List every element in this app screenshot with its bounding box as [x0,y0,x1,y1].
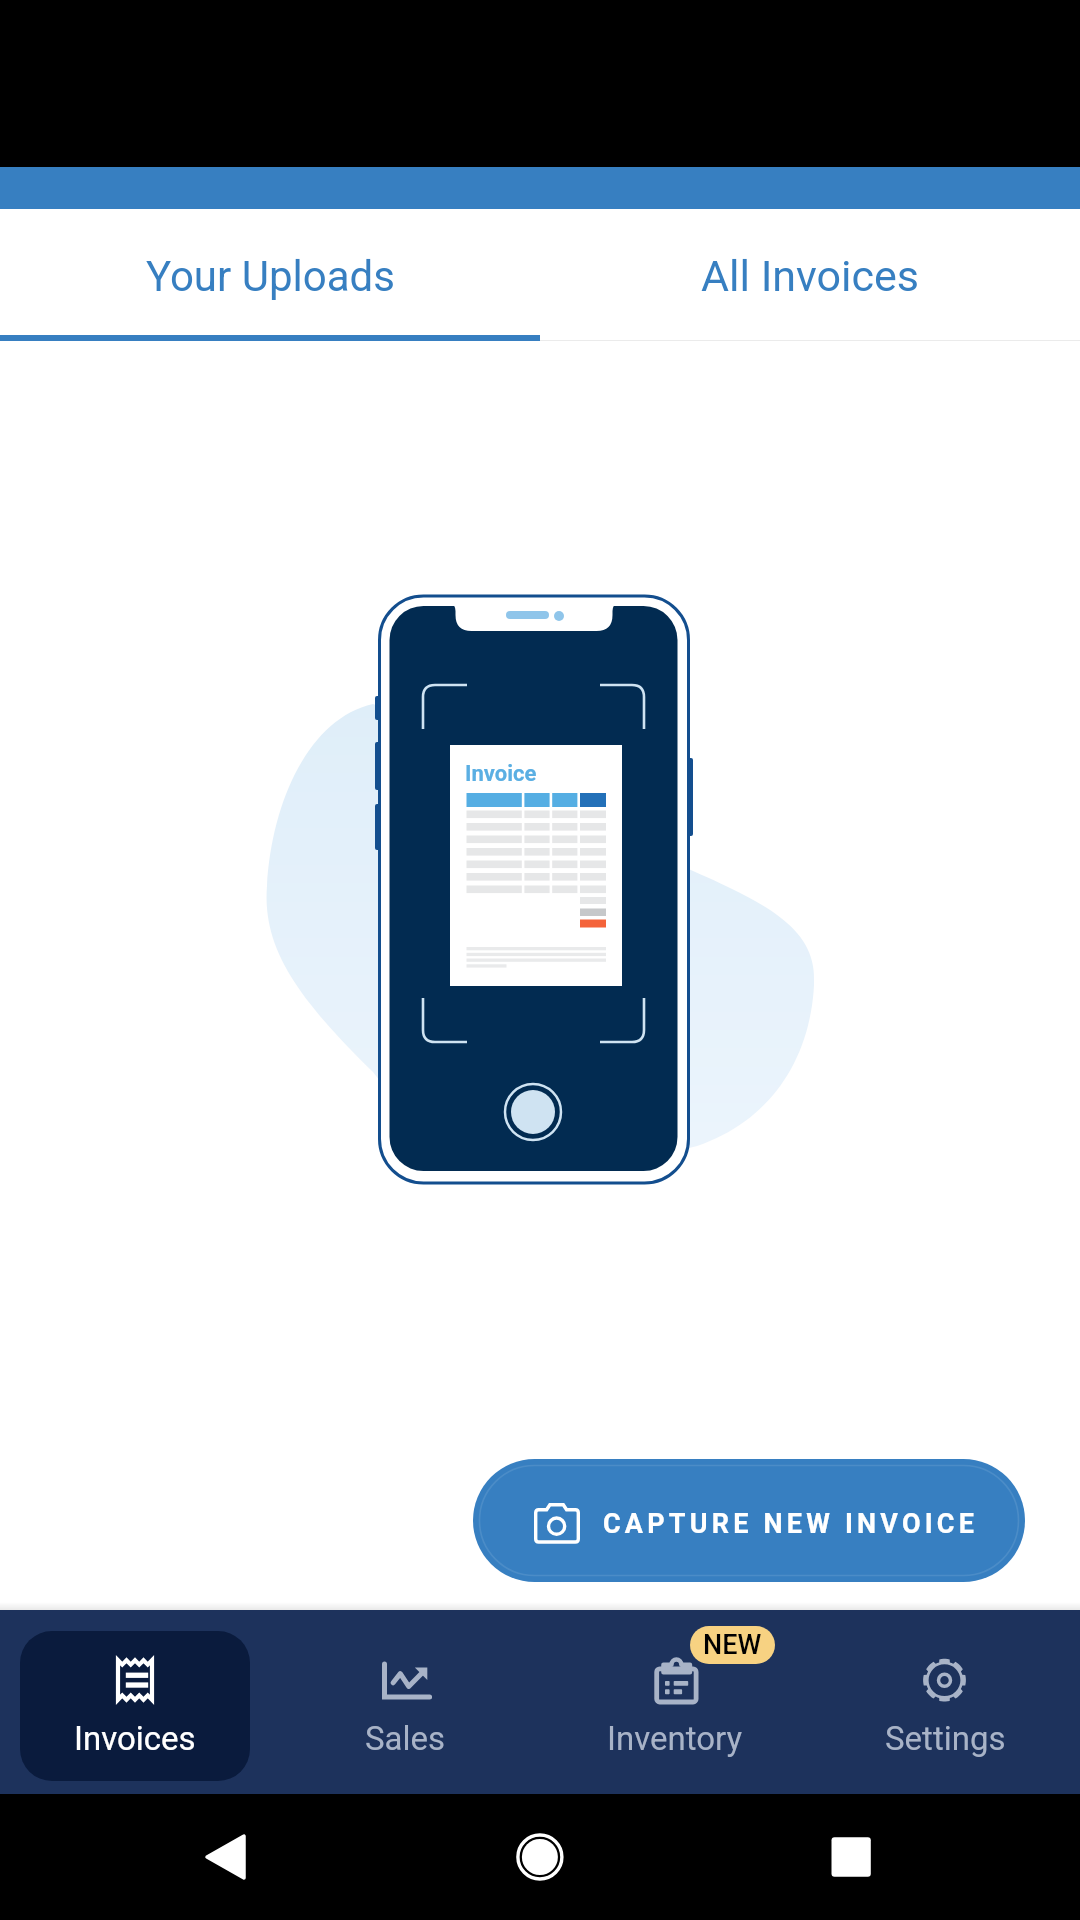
button[interactable]: Recent apps [720,1794,1080,1920]
staticText: Invoices [74,1719,196,1758]
staticText: Inventory [607,1719,743,1758]
button[interactable]: All Invoices [540,209,1080,341]
button[interactable]: CAPTURE NEW INVOICE [473,1459,1025,1582]
staticText: CAPTURE NEW INVOICE [603,1508,979,1540]
staticText: All Invoices [701,251,920,301]
staticText: Invoice [465,761,537,787]
staticText: Settings [885,1719,1006,1758]
button[interactable]: Back [0,1794,360,1920]
button[interactable]: Sales [290,1631,520,1781]
button[interactable]: Your Uploads [0,209,540,341]
staticText: Your Uploads [146,252,395,301]
button[interactable]: Settings [830,1631,1060,1781]
button[interactable]: Inventory [560,1631,790,1781]
button[interactable]: Invoices [20,1631,250,1781]
staticText: Sales [365,1719,446,1758]
button[interactable]: Home [360,1794,720,1920]
staticText: NEW [703,1629,762,1661]
